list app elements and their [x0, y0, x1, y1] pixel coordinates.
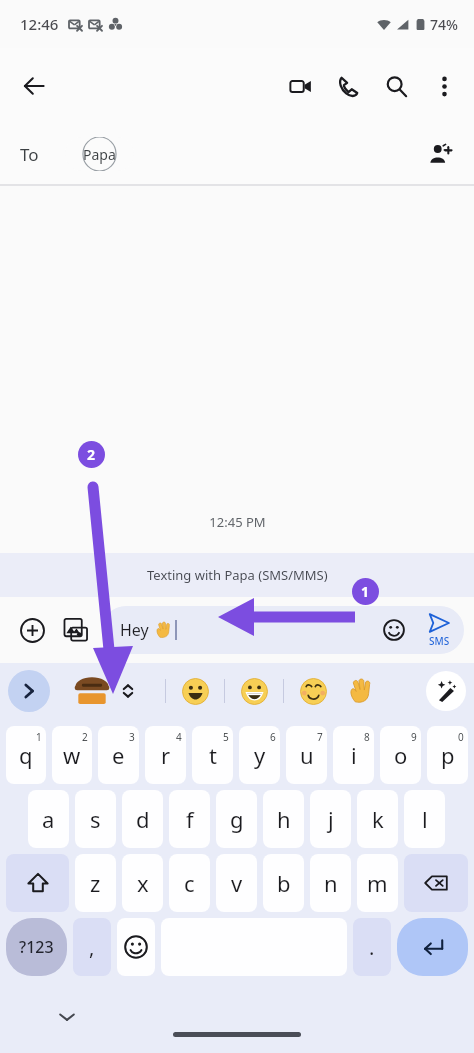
staticText: j [328, 804, 334, 834]
staticText: . [369, 934, 375, 961]
button[interactable]: , [73, 918, 111, 976]
button[interactable]: y [239, 726, 280, 784]
button[interactable]: HEY sticker [72, 671, 112, 711]
staticText: s [90, 804, 101, 834]
button[interactable]: u [286, 726, 327, 784]
button[interactable]: j [310, 790, 351, 848]
staticText: 7 [317, 730, 323, 744]
button[interactable]: c [169, 854, 210, 912]
staticText: e [112, 740, 125, 770]
button[interactable]: Wave emoji [343, 674, 377, 708]
staticText: 9 [411, 730, 417, 744]
button[interactable]: f [169, 790, 210, 848]
staticText: u [300, 740, 314, 770]
button[interactable]: m [357, 854, 398, 912]
button[interactable]: w [52, 726, 92, 784]
staticText: q [19, 740, 33, 770]
staticText: v [231, 868, 243, 898]
button[interactable]: Search [372, 62, 420, 110]
staticText: n [324, 868, 338, 898]
button[interactable]: Add people [418, 132, 462, 176]
button[interactable]: p [427, 726, 468, 784]
staticText: w [63, 740, 81, 770]
staticText: SMS [429, 634, 450, 648]
button[interactable]: t [192, 726, 233, 784]
button[interactable]: Hide keyboard [50, 1000, 84, 1034]
button[interactable]: Magic compose [426, 671, 466, 711]
button[interactable]: b [263, 854, 304, 912]
button[interactable]: s [75, 790, 116, 848]
button[interactable]: Papa [65, 137, 134, 171]
button[interactable]: i [333, 726, 374, 784]
staticText: 12:46 [20, 14, 59, 34]
button[interactable]: Video call [276, 62, 324, 110]
staticText: 0 [458, 730, 464, 744]
button[interactable]: e [98, 726, 139, 784]
button[interactable]: n [310, 854, 351, 912]
button[interactable]: Emoji [236, 673, 272, 709]
staticText: Hey [120, 619, 149, 641]
button[interactable]: r [145, 726, 186, 784]
button[interactable]: Shift [6, 854, 69, 912]
staticText: i [351, 740, 357, 770]
staticText: l [422, 804, 428, 834]
button[interactable]: . [353, 918, 391, 976]
button[interactable]: Add attachment [10, 608, 54, 652]
staticText: x [137, 868, 149, 898]
staticText: f [186, 804, 194, 834]
button[interactable]: g [216, 790, 257, 848]
button[interactable]: v [216, 854, 257, 912]
staticText: k [372, 804, 384, 834]
button[interactable]: z [75, 854, 116, 912]
staticText: r [161, 740, 171, 770]
staticText: t [209, 740, 217, 770]
button[interactable]: x [122, 854, 163, 912]
staticText: Papa [83, 145, 116, 164]
staticText: p [441, 740, 455, 770]
button[interactable]: k [357, 790, 398, 848]
button[interactable]: h [263, 790, 304, 848]
staticText: , [89, 934, 95, 961]
button[interactable]: q [6, 726, 46, 784]
staticText: 3 [129, 730, 135, 744]
button[interactable]: Enter [397, 918, 468, 976]
staticText: g [230, 804, 244, 834]
button[interactable]: Backspace [404, 854, 468, 912]
staticText: ?123 [19, 936, 54, 958]
staticText: h [277, 804, 291, 834]
button[interactable]: More options [420, 62, 468, 110]
button[interactable]: More stickers [116, 679, 140, 703]
staticText: To [20, 143, 39, 166]
staticText: y [254, 740, 266, 770]
staticText: 8 [364, 730, 370, 744]
button[interactable]: Back [10, 62, 58, 110]
button[interactable]: Send SMS [416, 606, 462, 654]
staticText: 12:45 PM [209, 513, 266, 531]
button[interactable]: Emoji [295, 673, 331, 709]
button[interactable]: Gallery [54, 608, 98, 652]
button[interactable]: Expand toolbar [8, 670, 50, 712]
button[interactable]: ?123 [6, 918, 67, 976]
button[interactable]: Emoji [376, 612, 412, 648]
staticText: d [136, 804, 150, 834]
button[interactable]: Emoji [177, 673, 213, 709]
staticText: 6 [270, 730, 276, 744]
button[interactable]: a [28, 790, 69, 848]
staticText: 2 [87, 445, 96, 464]
staticText: z [90, 868, 101, 898]
staticText: b [277, 868, 291, 898]
button[interactable]: Hey [102, 606, 464, 654]
staticText: a [42, 804, 55, 834]
staticText: 4 [176, 730, 182, 744]
button[interactable]: d [122, 790, 163, 848]
staticText: 1 [36, 730, 42, 744]
staticText: 1 [361, 582, 370, 601]
button[interactable]: o [380, 726, 421, 784]
staticText: 74% [430, 15, 458, 34]
button[interactable]: l [404, 790, 445, 848]
staticText: c [184, 868, 195, 898]
button[interactable]: Call [324, 62, 372, 110]
staticText: 5 [223, 730, 229, 744]
button[interactable]: Emoji keyboard [117, 918, 155, 976]
